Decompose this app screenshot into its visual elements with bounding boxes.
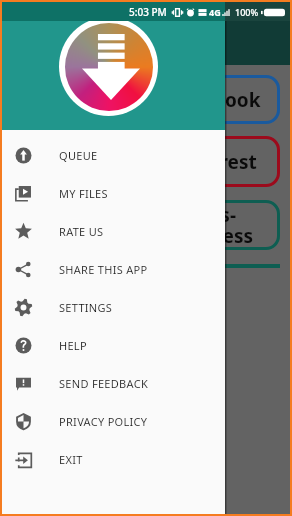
button[interactable]: SHARE THIS APP: [2, 250, 225, 288]
button[interactable]: SETTINGS: [2, 288, 225, 326]
button[interactable]: SEND FEEDBACK: [2, 364, 225, 402]
staticText: HELP: [59, 338, 87, 353]
staticText: 100%: [235, 6, 259, 18]
staticText: EXIT: [59, 452, 83, 467]
staticText: PRIVACY POLICY: [59, 414, 148, 429]
staticText: 4G: [209, 6, 221, 18]
button[interactable]: App logo: [59, 17, 158, 116]
staticText: Video Downloader: [60, 23, 201, 45]
staticText: QUEUE: [59, 148, 98, 163]
button[interactable]: QUEUE: [2, 136, 225, 174]
button[interactable]: PRIVACY POLICY: [2, 402, 225, 440]
staticText: SHARE THIS APP: [59, 262, 148, 277]
staticText: Facebook: [170, 87, 261, 113]
staticText: Whats- Business: [170, 202, 253, 249]
staticText: 5:03 PM: [129, 5, 167, 19]
staticText: MY FILES: [59, 186, 108, 201]
staticText: RATE US: [59, 224, 104, 239]
button[interactable]: MY FILES: [2, 174, 225, 212]
button[interactable]: EXIT: [2, 440, 225, 478]
staticText: SETTINGS: [59, 300, 113, 315]
button[interactable]: Whats- Business: [12, 200, 280, 250]
staticText: SEND FEEDBACK: [59, 376, 148, 391]
button[interactable]: RATE US: [2, 212, 225, 250]
button[interactable]: Pinterest: [12, 136, 280, 187]
button[interactable]: HELP: [2, 326, 225, 364]
button[interactable]: Facebook: [12, 75, 280, 124]
button[interactable]: Open navigation drawer: [12, 16, 48, 52]
staticText: Pinterest: [170, 149, 257, 175]
